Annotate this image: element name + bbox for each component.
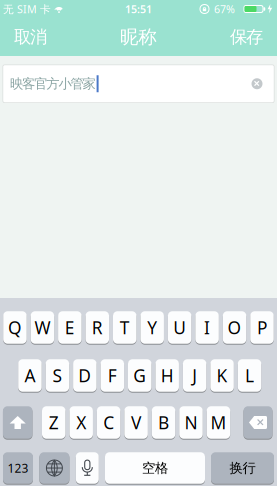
staticText: 67%: [214, 2, 235, 16]
button[interactable]: 换行: [211, 452, 274, 484]
staticText: E: [65, 316, 75, 339]
button[interactable]: V: [124, 406, 148, 439]
button[interactable]: T: [113, 311, 136, 344]
button[interactable]: X: [69, 406, 93, 439]
button[interactable]: E: [58, 311, 82, 344]
button[interactable]: Dictate: [76, 452, 99, 484]
staticText: 取消: [14, 26, 47, 48]
staticText: 昵称: [120, 25, 157, 48]
button[interactable]: O: [223, 311, 246, 344]
button[interactable]: 空格: [105, 452, 205, 484]
button[interactable]: H: [155, 359, 179, 392]
staticText: V: [131, 411, 141, 434]
button[interactable]: C: [97, 406, 120, 439]
button[interactable]: L: [238, 359, 261, 392]
staticText: C: [103, 411, 114, 434]
staticText: X: [76, 411, 86, 434]
button[interactable]: K: [210, 359, 234, 392]
staticText: J: [192, 364, 197, 387]
staticText: D: [78, 364, 91, 387]
staticText: A: [24, 364, 35, 387]
staticText: I: [204, 316, 210, 339]
button[interactable]: N: [179, 406, 203, 439]
staticText: 无 SIM 卡: [3, 2, 51, 16]
button[interactable]: F: [100, 359, 124, 392]
button[interactable]: Q: [3, 311, 27, 344]
button[interactable]: Clear text: [249, 76, 264, 91]
button[interactable]: J: [183, 359, 206, 392]
staticText: 空格: [142, 460, 168, 476]
button[interactable]: W: [31, 311, 54, 344]
staticText: G: [133, 364, 146, 387]
staticText: T: [120, 316, 130, 339]
button[interactable]: 123: [3, 452, 33, 484]
button[interactable]: U: [168, 311, 191, 344]
button[interactable]: Y: [140, 311, 164, 344]
staticText: Q: [8, 316, 22, 339]
staticText: H: [161, 364, 174, 387]
staticText: R: [92, 316, 103, 339]
staticText: L: [245, 364, 254, 387]
button[interactable]: R: [85, 311, 109, 344]
button[interactable]: P: [250, 311, 274, 344]
staticText: N: [184, 411, 197, 434]
button[interactable]: 取消: [0, 18, 47, 56]
button[interactable]: Z: [42, 406, 65, 439]
staticText: 映客官方小管家: [10, 76, 96, 92]
staticText: K: [217, 364, 228, 387]
staticText: Y: [147, 316, 157, 339]
button[interactable]: 保存: [230, 18, 277, 56]
staticText: 换行: [229, 460, 255, 476]
button[interactable]: G: [128, 359, 151, 392]
button[interactable]: D: [73, 359, 97, 392]
button[interactable]: B: [152, 406, 175, 439]
staticText: P: [257, 316, 267, 339]
button[interactable]: I: [195, 311, 219, 344]
staticText: 123: [7, 460, 28, 476]
button[interactable]: A: [18, 359, 42, 392]
staticText: 15:51: [125, 2, 152, 16]
staticText: Z: [49, 411, 59, 434]
button[interactable]: Next keyboard: [39, 452, 69, 484]
button[interactable]: Nickname text field: [2, 64, 274, 103]
staticText: S: [52, 364, 62, 387]
button[interactable]: Shift: [3, 406, 32, 439]
staticText: B: [158, 411, 169, 434]
button[interactable]: S: [46, 359, 69, 392]
staticText: 保存: [230, 26, 263, 48]
staticText: W: [34, 316, 50, 339]
staticText: U: [173, 316, 186, 339]
staticText: M: [210, 411, 226, 434]
staticText: O: [227, 316, 241, 339]
button[interactable]: Delete: [243, 406, 272, 439]
button[interactable]: M: [207, 406, 230, 439]
staticText: F: [108, 364, 117, 387]
